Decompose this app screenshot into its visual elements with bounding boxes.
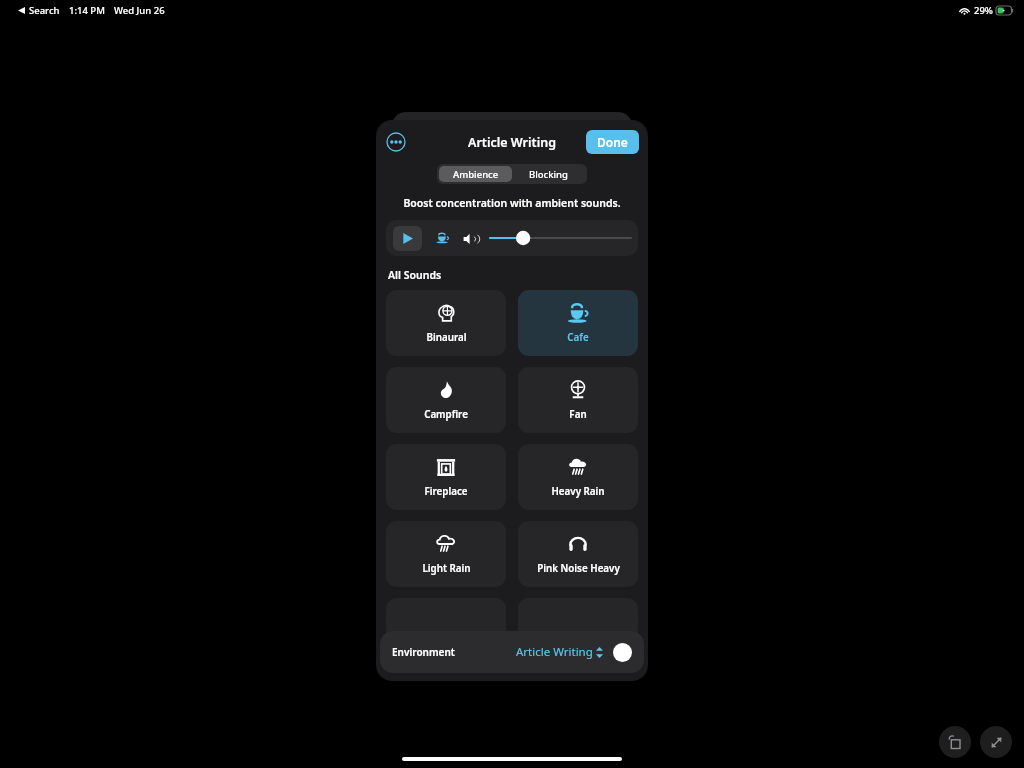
staticText: Pink Noise Heavy (537, 562, 620, 575)
button[interactable] (490, 228, 631, 248)
staticText: Search (29, 4, 60, 17)
button[interactable]: Rotate (939, 726, 971, 758)
staticText: Fan (569, 408, 587, 421)
staticText: Article Writing (468, 134, 556, 151)
staticText: Wed Jun 26 (114, 4, 165, 17)
button[interactable]: Heavy Rain (518, 444, 638, 510)
button[interactable] (518, 598, 638, 664)
button[interactable]: Binaural (386, 290, 506, 356)
staticText: Light Rain (422, 562, 471, 575)
button[interactable]: Pink Noise Heavy (518, 521, 638, 587)
staticText: Heavy Rain (551, 485, 605, 498)
staticText: Binaural (426, 331, 467, 344)
staticText: Done (597, 134, 628, 150)
button[interactable]: Expand (980, 726, 1012, 758)
button[interactable]: Play (393, 226, 422, 251)
button[interactable]: Campfire (386, 367, 506, 433)
button[interactable]: Blocking (512, 166, 585, 182)
staticText: Ambience (453, 168, 499, 181)
button[interactable]: Cafe (518, 290, 638, 356)
button[interactable]: Light Rain (386, 521, 506, 587)
button[interactable]: Toggle (613, 643, 632, 662)
button[interactable]: Ambience (439, 166, 512, 182)
staticText: Blocking (529, 168, 568, 181)
button[interactable]: Done (586, 130, 639, 154)
button[interactable] (386, 598, 506, 664)
staticText: Fireplace (424, 485, 468, 498)
staticText: 29% (974, 4, 993, 17)
button[interactable]: Fan (518, 367, 638, 433)
staticText: All Sounds (388, 268, 442, 282)
staticText: Boost concentration with ambient sounds. (376, 196, 648, 210)
staticText: Environment (392, 645, 455, 659)
button[interactable]: Cafe sound (434, 230, 450, 246)
staticText: Campfire (424, 408, 468, 421)
button[interactable]: Volume (462, 230, 479, 247)
staticText: Cafe (567, 331, 589, 344)
staticText: Article Writing (516, 644, 593, 660)
button[interactable]: More options (386, 132, 406, 152)
button[interactable]: Fireplace (386, 444, 506, 510)
staticText: 1:14 PM (69, 4, 105, 17)
button[interactable]: Environment (380, 631, 644, 673)
